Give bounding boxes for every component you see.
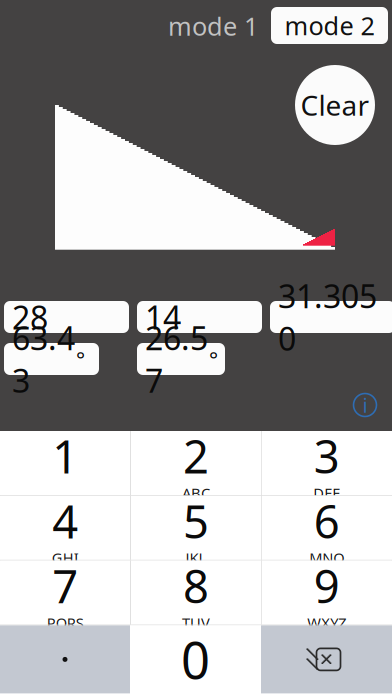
- staticText: 5: [183, 491, 209, 551]
- button[interactable]: 2: [131, 431, 261, 495]
- button[interactable]: mode 2: [271, 7, 388, 44]
- staticText: Clear: [300, 86, 369, 124]
- staticText: 14: [145, 296, 181, 338]
- button[interactable]: 5: [131, 496, 261, 560]
- button[interactable]: 1: [0, 431, 130, 495]
- staticText: °: [76, 345, 85, 373]
- button[interactable]: 63.43: [4, 343, 99, 375]
- button[interactable]: 9: [262, 561, 392, 625]
- staticText: JKL: [185, 548, 206, 568]
- staticText: GHI: [52, 548, 79, 568]
- staticText: PQRS: [47, 613, 84, 632]
- button[interactable]: 31.3050: [270, 301, 392, 333]
- staticText: 28: [12, 296, 48, 338]
- staticText: WXYZ: [307, 613, 346, 632]
- button[interactable]: 28: [4, 301, 129, 333]
- button[interactable]: Decimal point: [0, 625, 130, 693]
- button[interactable]: 4: [0, 496, 130, 560]
- staticText: °: [209, 345, 218, 373]
- staticText: mode 2: [284, 9, 374, 42]
- staticText: 4: [52, 491, 78, 551]
- staticText: TUV: [182, 613, 210, 632]
- button[interactable]: 26.57: [137, 343, 225, 375]
- staticText: ABC: [182, 483, 210, 503]
- staticText: DEF: [313, 483, 340, 503]
- button[interactable]: 14: [137, 301, 262, 333]
- staticText: 31.3050: [278, 274, 377, 359]
- staticText: i: [362, 392, 367, 418]
- staticText: 9: [314, 555, 340, 616]
- button[interactable]: Information: [348, 388, 382, 422]
- staticText: 2: [183, 426, 209, 486]
- staticText: MNO: [309, 548, 344, 568]
- staticText: 7: [52, 555, 78, 616]
- staticText: 0: [181, 626, 210, 693]
- staticText: 6: [314, 491, 340, 551]
- button[interactable]: 8: [131, 561, 261, 625]
- staticText: 8: [183, 555, 209, 616]
- staticText: mode 1: [168, 9, 258, 43]
- button[interactable]: 6: [262, 496, 392, 560]
- button[interactable]: Delete: [261, 625, 392, 693]
- staticText: 3: [314, 426, 340, 486]
- button[interactable]: 7: [0, 561, 130, 625]
- button[interactable]: Clear: [295, 65, 375, 145]
- staticText: 26.57: [145, 316, 208, 401]
- button[interactable]: 0: [130, 625, 261, 693]
- staticText: 1: [52, 426, 78, 486]
- button[interactable]: 3: [262, 431, 392, 495]
- staticText: 63.43: [12, 316, 75, 401]
- button[interactable]: mode 1: [164, 7, 262, 45]
